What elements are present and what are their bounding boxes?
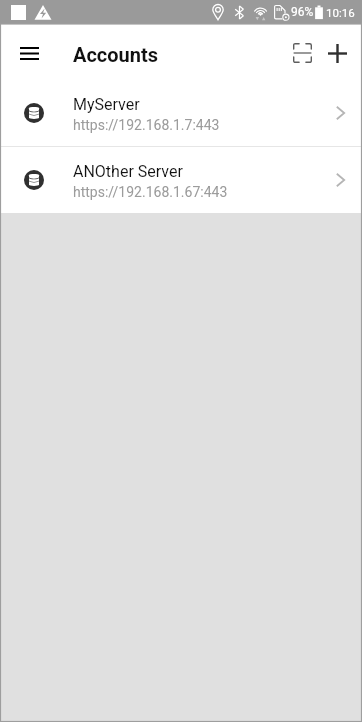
button[interactable]: ANOther Server (0, 147, 362, 213)
staticText: https://192.168.1.67:443 (73, 184, 228, 200)
button[interactable]: MyServer (0, 80, 362, 146)
button[interactable]: Open navigation drawer (9, 33, 49, 73)
button[interactable]: Scan QR code (280, 29, 324, 77)
staticText: MyServer (73, 95, 140, 114)
staticText: https://192.168.1.7:443 (73, 117, 220, 133)
staticText: Accounts (73, 43, 159, 66)
staticText: ANOther Server (73, 162, 183, 181)
staticText: 96% (291, 5, 314, 19)
button[interactable]: Add account (315, 29, 359, 77)
staticText: 10:16 (326, 6, 355, 19)
